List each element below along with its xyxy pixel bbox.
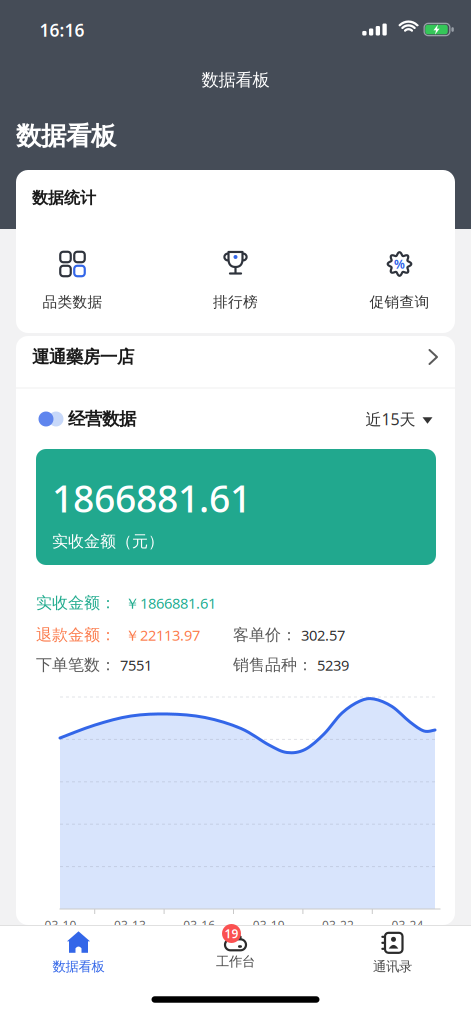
button[interactable]: 通讯录 <box>337 925 447 981</box>
button[interactable]: 近15天 <box>365 408 432 430</box>
staticText: 近15天 <box>365 408 415 430</box>
staticText: 客单价： <box>233 625 297 645</box>
staticText: 19 <box>224 925 238 941</box>
staticText: 数据看板 <box>16 120 116 151</box>
staticText: 通讯录 <box>373 958 412 975</box>
staticText: % <box>394 256 405 272</box>
staticText: ￥22113.97 <box>125 625 200 645</box>
staticText: 16:16 <box>39 18 84 41</box>
button[interactable]: 工作台 <box>180 925 290 977</box>
staticText: 销售品种： <box>233 655 313 675</box>
staticText: 1866881.61 <box>52 473 251 523</box>
staticText: 03-22 <box>322 917 354 933</box>
staticText: 数据看板 <box>201 69 269 91</box>
staticText: 03-19 <box>253 917 285 933</box>
staticText: 下单笔数： <box>36 655 116 675</box>
staticText: 302.57 <box>301 625 345 645</box>
staticText: 品类数据 <box>42 293 102 311</box>
staticText: 数据统计 <box>32 188 96 208</box>
staticText: 03-24 <box>391 917 423 933</box>
staticText: 实收金额（元） <box>52 532 164 551</box>
staticText: 工作台 <box>216 953 255 970</box>
staticText: 03-13 <box>114 917 146 933</box>
staticText: 03-16 <box>183 917 215 933</box>
staticText: ￥1866881.61 <box>125 593 216 613</box>
button[interactable]: 数据看板 <box>23 925 133 981</box>
button[interactable]: 品类数据 <box>42 250 102 311</box>
staticText: 7551 <box>120 655 152 675</box>
staticText: 促销查询 <box>369 293 429 311</box>
staticText: 退款金额： <box>36 625 116 645</box>
staticText: 排行榜 <box>213 293 258 311</box>
button[interactable]: 運通藥房一店 <box>16 333 455 381</box>
button[interactable]: % <box>369 250 429 311</box>
staticText: 5239 <box>317 655 349 675</box>
staticText: 03-10 <box>44 917 76 933</box>
staticText: 经营数据 <box>68 408 136 430</box>
button[interactable]: 排行榜 <box>213 250 258 311</box>
staticText: 数据看板 <box>52 958 104 975</box>
staticText: 運通藥房一店 <box>32 346 134 368</box>
staticText: 实收金额： <box>36 593 116 613</box>
